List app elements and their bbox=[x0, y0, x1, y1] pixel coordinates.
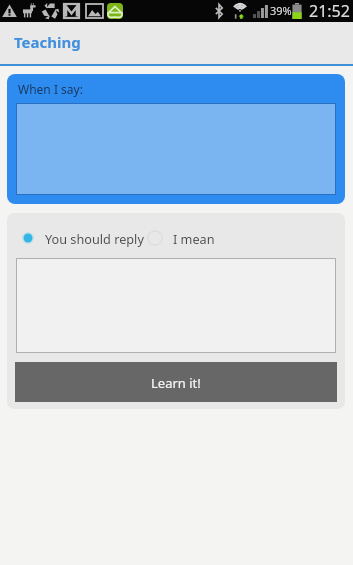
staticText: You should reply bbox=[45, 230, 144, 247]
staticText: I mean bbox=[173, 230, 215, 247]
button[interactable]: Phrase input bbox=[16, 103, 336, 195]
staticText: 21:52 bbox=[309, 0, 350, 22]
staticText: Learn it! bbox=[151, 374, 201, 392]
staticText: 39% bbox=[270, 3, 292, 18]
staticText: When I say: bbox=[18, 81, 83, 97]
button[interactable]: Teaching bbox=[0, 22, 353, 64]
button[interactable]: Reply input bbox=[16, 258, 336, 353]
button[interactable]: Learn it! bbox=[15, 362, 337, 402]
button[interactable]: I mean bbox=[146, 229, 215, 247]
staticText: Teaching bbox=[14, 32, 81, 52]
button[interactable]: You should reply bbox=[19, 229, 144, 247]
